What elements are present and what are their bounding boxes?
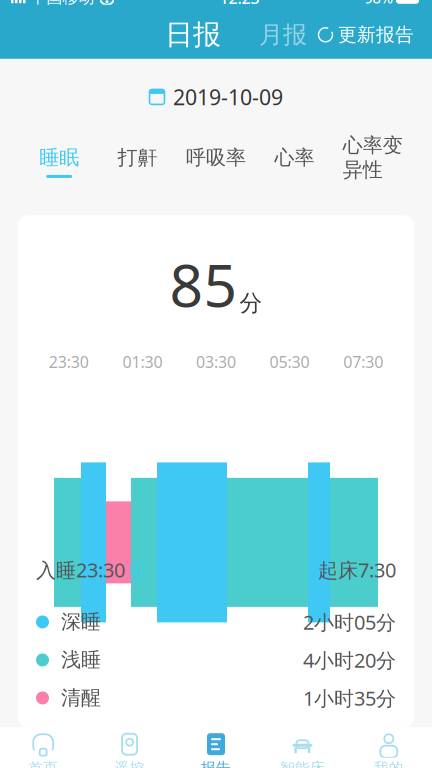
button[interactable]: 睡眠 xyxy=(20,141,98,182)
staticText: 07:30 xyxy=(343,351,383,372)
staticText: 日报 xyxy=(165,18,221,52)
staticText: i xyxy=(135,561,139,578)
staticText: 智能床 xyxy=(280,759,325,768)
button[interactable]: 报告 xyxy=(173,727,259,768)
staticText: 遥控 xyxy=(115,759,145,768)
staticText: 03:30 xyxy=(196,351,236,372)
staticText: 2019-10-09 xyxy=(173,83,283,111)
staticText: 05:30 xyxy=(270,351,310,372)
staticText: 98% xyxy=(364,0,392,7)
button[interactable]: 更新报告 xyxy=(312,17,420,52)
staticText: 浅睡 xyxy=(61,648,101,672)
staticText: 起床7:30 xyxy=(318,556,396,583)
staticText: 2小时05分 xyxy=(303,609,396,635)
staticText: 入睡23:30 xyxy=(36,556,125,583)
staticText: 我的 xyxy=(374,759,404,768)
staticText: 打鼾 xyxy=(118,145,158,170)
staticText: 月报 xyxy=(259,20,307,49)
staticText: 中国移动 xyxy=(30,0,94,8)
staticText: 深睡 xyxy=(61,610,101,634)
button[interactable]: 打鼾 xyxy=(98,141,177,182)
staticText: 23:30 xyxy=(49,351,89,372)
button[interactable]: 遥控 xyxy=(86,727,173,768)
staticText: 呼吸率 xyxy=(186,145,246,170)
button[interactable]: 呼吸率 xyxy=(177,141,255,182)
button[interactable]: 日报 xyxy=(157,12,229,58)
staticText: 01:30 xyxy=(122,351,162,372)
staticText: 更新报告 xyxy=(338,23,414,46)
staticText: 85 xyxy=(169,245,237,323)
button[interactable]: 月报 xyxy=(251,14,315,55)
button[interactable]: 心率变异性 xyxy=(334,129,412,194)
staticText: 心率变异性 xyxy=(343,133,403,182)
button[interactable]: 智能床 xyxy=(259,727,346,768)
staticText: 报告 xyxy=(201,759,231,768)
staticText: 清醒 xyxy=(61,686,101,710)
button[interactable]: 心率 xyxy=(255,141,334,182)
staticText: 心率 xyxy=(274,145,314,170)
staticText: 分 xyxy=(239,289,262,317)
button[interactable]: 首页 xyxy=(0,727,86,768)
staticText: 12:23 xyxy=(219,0,259,8)
staticText: 1小时35分 xyxy=(303,685,396,711)
staticText: 睡眠 xyxy=(39,145,79,170)
staticText: 4小时20分 xyxy=(303,647,396,673)
button[interactable]: 我的 xyxy=(346,727,432,768)
staticText: 首页 xyxy=(28,759,58,768)
button[interactable]: 2019-10-09 xyxy=(139,75,293,119)
